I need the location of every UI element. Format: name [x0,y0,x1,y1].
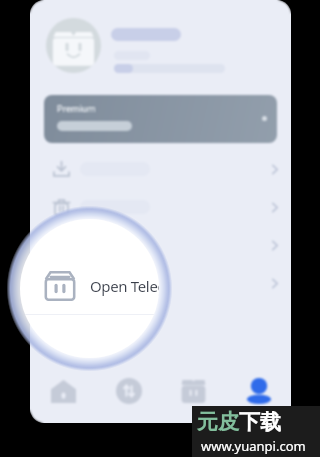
button[interactable]: Transfers [96,368,161,414]
staticText: www.yuanpi.com [201,437,306,455]
staticText: 下载 [239,409,281,435]
staticText: 元皮 [197,409,239,435]
button[interactable] [30,226,291,264]
button[interactable] [30,264,291,302]
staticText: Premium [57,102,96,114]
button[interactable]: Home [30,368,96,414]
button[interactable]: Profile [226,368,291,414]
button[interactable]: Open Telegram [43,263,159,309]
button[interactable] [30,150,291,188]
staticText: Open Telegram [90,276,159,296]
button[interactable] [30,188,291,226]
button[interactable]: Bots [161,368,226,414]
